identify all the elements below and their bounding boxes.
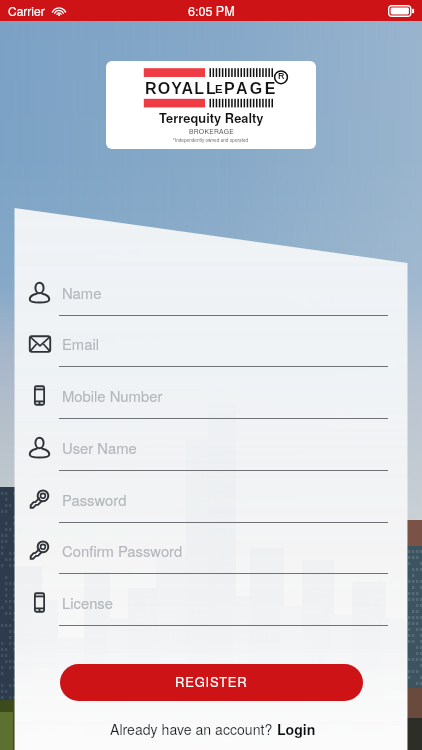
button[interactable]: Mobile Number	[28, 378, 389, 419]
staticText: *Independently owned and operated	[173, 137, 249, 144]
button[interactable]: Name	[28, 275, 389, 316]
staticText: User Name	[62, 437, 137, 458]
staticText: License	[62, 592, 113, 613]
staticText: Login	[277, 719, 316, 739]
staticText: BROKERAGE	[189, 126, 234, 136]
staticText: Mobile Number	[62, 385, 163, 406]
staticText: E	[215, 83, 223, 96]
staticText: Email	[62, 333, 99, 354]
staticText: 6:05 PM	[188, 2, 235, 20]
button[interactable]: User Name	[28, 430, 389, 471]
button[interactable]: Password	[28, 482, 389, 523]
button[interactable]: Confirm Password	[28, 533, 389, 574]
staticText: L	[206, 80, 216, 98]
staticText: ROYAL	[145, 80, 206, 98]
staticText: Password	[62, 489, 127, 510]
staticText: REGISTER	[175, 672, 248, 691]
button[interactable]: License	[28, 585, 389, 626]
staticText: Carrier	[8, 2, 45, 19]
staticText: Name	[62, 282, 102, 303]
button[interactable]: Email	[28, 326, 389, 367]
button[interactable]: Login	[277, 719, 316, 739]
staticText: PAGE	[224, 80, 278, 98]
button[interactable]: REGISTER	[60, 664, 363, 701]
staticText: Terrequity Realty	[159, 108, 264, 126]
staticText: Already have an account?	[110, 719, 277, 739]
staticText: Confirm Password	[62, 540, 183, 561]
staticText: R	[278, 71, 285, 81]
